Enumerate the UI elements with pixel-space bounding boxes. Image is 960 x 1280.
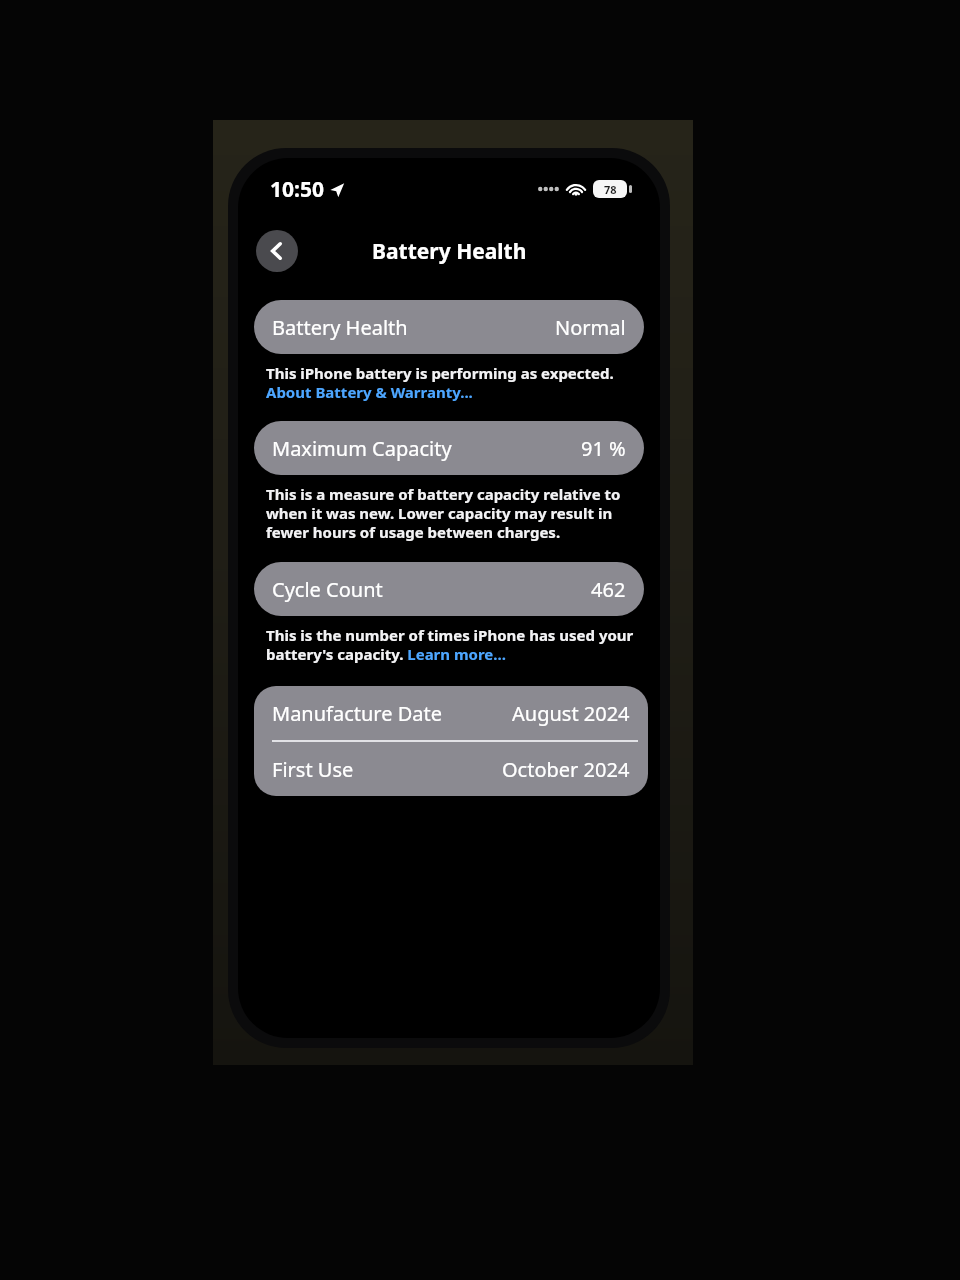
staticText: Cycle Count: [272, 576, 383, 603]
button[interactable]: Maximum Capacity: [254, 421, 644, 475]
staticText: 91 %: [581, 435, 626, 462]
staticText: 462: [591, 576, 626, 603]
button[interactable]: Battery Health: [254, 300, 644, 354]
button[interactable]: Cycle Count: [254, 562, 644, 616]
staticText: Battery Health: [372, 237, 527, 266]
button[interactable]: Manufacture Date: [254, 686, 648, 740]
staticText: First Use: [272, 756, 354, 783]
staticText: Normal: [555, 314, 626, 341]
staticText: October 2024: [502, 756, 630, 783]
staticText: This is a measure of battery capacity re…: [266, 484, 638, 542]
staticText: This iPhone battery is performing as exp…: [266, 363, 638, 402]
staticText: August 2024: [512, 700, 630, 727]
staticText: 10:50: [270, 175, 324, 204]
staticText: Manufacture Date: [272, 700, 443, 727]
staticText: 78: [604, 182, 617, 197]
staticText: This is the number of times iPhone has u…: [266, 625, 638, 664]
staticText: Maximum Capacity: [272, 435, 452, 462]
staticText: Battery Health: [272, 314, 408, 341]
button[interactable]: Back: [256, 230, 298, 272]
button[interactable]: First Use: [254, 742, 648, 796]
